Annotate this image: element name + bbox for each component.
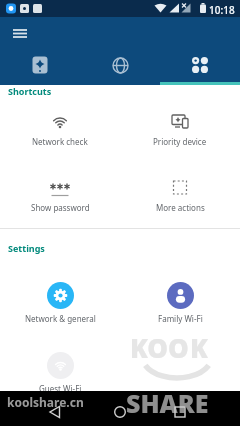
staticText: koolshare.cn bbox=[7, 394, 84, 410]
button[interactable]: Guest Wi-Fi bbox=[0, 352, 120, 398]
staticText: More actions bbox=[156, 202, 205, 213]
button[interactable]: Family Wi-Fi bbox=[120, 282, 240, 328]
button[interactable] bbox=[0, 48, 80, 82]
button[interactable]: Priority device bbox=[120, 112, 240, 156]
button[interactable] bbox=[160, 401, 200, 423]
button[interactable]: Network & general bbox=[0, 282, 120, 328]
staticText: Settings bbox=[8, 242, 45, 254]
staticText: Guest Wi-Fi bbox=[39, 383, 82, 394]
staticText: SHARE bbox=[126, 386, 209, 420]
staticText: Network & general bbox=[25, 313, 96, 324]
staticText: Family Wi-Fi bbox=[158, 313, 203, 324]
button[interactable] bbox=[100, 401, 140, 423]
button[interactable] bbox=[160, 48, 240, 82]
button[interactable] bbox=[10, 25, 32, 43]
staticText: Show password bbox=[31, 202, 90, 213]
staticText: K bbox=[190, 330, 208, 365]
button[interactable]: More actions bbox=[120, 178, 240, 222]
staticText: Shortcuts bbox=[8, 85, 52, 97]
button[interactable] bbox=[35, 401, 75, 423]
staticText: 10:18 bbox=[209, 3, 235, 17]
button[interactable]: Network check bbox=[0, 112, 120, 156]
button[interactable] bbox=[80, 48, 160, 82]
staticText: Network check bbox=[32, 136, 88, 147]
button[interactable]: Show password bbox=[0, 178, 120, 222]
staticText: Priority device bbox=[153, 136, 207, 147]
staticText: KOO bbox=[130, 330, 189, 365]
